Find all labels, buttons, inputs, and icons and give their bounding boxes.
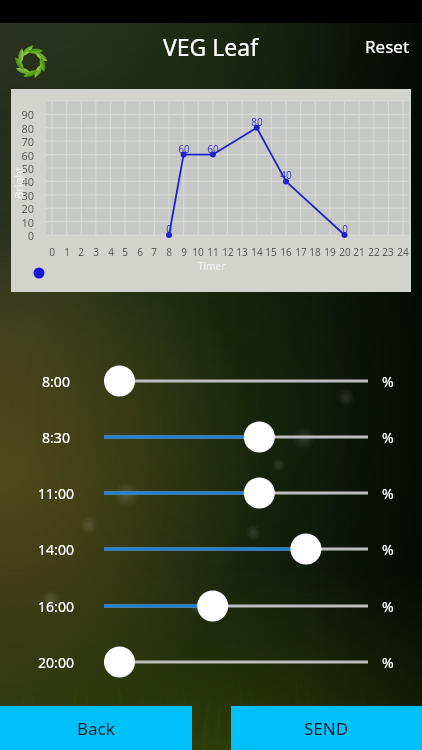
staticText: 8:30 bbox=[26, 428, 86, 447]
staticText: Timer bbox=[198, 259, 226, 273]
button[interactable]: SEND bbox=[231, 706, 422, 750]
staticText: 0 bbox=[160, 222, 178, 236]
staticText: SEND bbox=[304, 717, 349, 740]
button[interactable]: 8:00 bbox=[0, 363, 422, 399]
staticText: 30 bbox=[8, 188, 34, 203]
staticText: 16 bbox=[277, 245, 295, 259]
staticText: 12 bbox=[219, 245, 237, 259]
staticText: 23 bbox=[379, 245, 397, 259]
staticText: 10 bbox=[8, 215, 34, 230]
staticText: 7 bbox=[145, 245, 163, 259]
staticText: 60 bbox=[175, 142, 193, 156]
staticText: 17 bbox=[292, 245, 310, 259]
staticText: 11 bbox=[204, 245, 222, 259]
staticText: 2 bbox=[72, 245, 90, 259]
staticText: 22 bbox=[365, 245, 383, 259]
staticText: 40 bbox=[8, 174, 34, 189]
staticText: 11:00 bbox=[26, 484, 86, 503]
staticText: Bright bbox=[11, 166, 25, 199]
staticText: % bbox=[382, 372, 394, 391]
staticText: % bbox=[382, 484, 394, 503]
staticText: 1 bbox=[58, 245, 76, 259]
staticText: 0 bbox=[43, 245, 61, 259]
staticText: 24 bbox=[394, 245, 412, 259]
staticText: 9 bbox=[175, 245, 193, 259]
staticText: 8:00 bbox=[26, 372, 86, 391]
button[interactable]: Back bbox=[0, 706, 192, 750]
staticText: 90 bbox=[8, 107, 34, 122]
staticText: 19 bbox=[321, 245, 339, 259]
button[interactable]: 14:00 bbox=[0, 531, 422, 567]
button[interactable]: 8:30 bbox=[0, 419, 422, 455]
button[interactable]: Reset bbox=[356, 29, 419, 64]
staticText: % bbox=[382, 540, 394, 559]
button[interactable]: 20:00 bbox=[0, 644, 422, 680]
staticText: 0 bbox=[336, 222, 354, 236]
staticText: 13 bbox=[233, 245, 251, 259]
staticText: 5 bbox=[116, 245, 134, 259]
staticText: 18 bbox=[306, 245, 324, 259]
staticText: 15 bbox=[262, 245, 280, 259]
staticText: VEG Leaf bbox=[163, 31, 259, 59]
staticText: 0 bbox=[8, 228, 34, 243]
button[interactable]: 11:00 bbox=[0, 475, 422, 511]
staticText: 20:00 bbox=[26, 653, 86, 672]
staticText: 50 bbox=[8, 161, 34, 176]
staticText: 3 bbox=[87, 245, 105, 259]
staticText: 14:00 bbox=[26, 540, 86, 559]
staticText: 20 bbox=[336, 245, 354, 259]
staticText: 14 bbox=[248, 245, 266, 259]
staticText: 60 bbox=[204, 142, 222, 156]
staticText: % bbox=[382, 597, 394, 616]
staticText: 20 bbox=[8, 201, 34, 216]
staticText: 16:00 bbox=[26, 597, 86, 616]
other: VEG Leaf logo bbox=[11, 42, 51, 82]
staticText: 8 bbox=[160, 245, 178, 259]
staticText: 21 bbox=[350, 245, 368, 259]
staticText: % bbox=[382, 428, 394, 447]
staticText: 80 bbox=[248, 115, 266, 129]
staticText: Reset bbox=[365, 35, 410, 58]
staticText: 60 bbox=[8, 148, 34, 163]
staticText: 10 bbox=[189, 245, 207, 259]
staticText: 40 bbox=[277, 168, 295, 182]
staticText: 80 bbox=[8, 121, 34, 136]
staticText: Back bbox=[77, 717, 115, 740]
button[interactable]: 16:00 bbox=[0, 588, 422, 624]
staticText: % bbox=[382, 653, 394, 672]
staticText: 4 bbox=[102, 245, 120, 259]
staticText: 6 bbox=[131, 245, 149, 259]
staticText: 70 bbox=[8, 134, 34, 149]
